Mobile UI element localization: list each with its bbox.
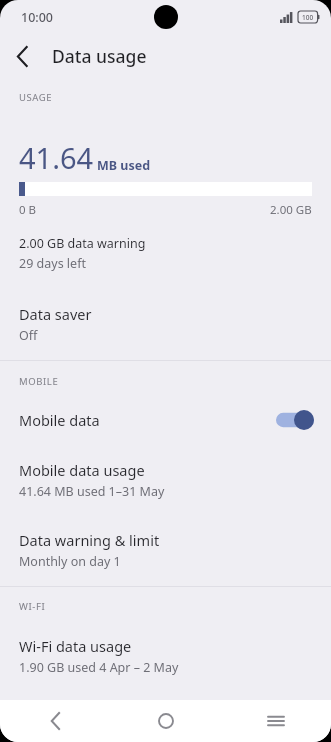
button[interactable]: Recent apps <box>221 700 331 742</box>
staticText: Off <box>19 327 38 344</box>
staticText: Wi-Fi data usage <box>19 636 132 656</box>
staticText: 41.64 MB used 1–31 May <box>19 483 165 500</box>
staticText: Data usage <box>52 44 147 68</box>
staticText: Monthly on day 1 <box>19 553 121 570</box>
button[interactable]: Back <box>0 700 111 742</box>
button[interactable]: Data saver <box>0 296 331 360</box>
staticText: 2.00 GB <box>270 202 312 218</box>
staticText: WI-FI <box>19 600 46 613</box>
staticText: 29 days left <box>19 255 86 272</box>
button[interactable]: Wi-Fi data usage <box>0 622 331 692</box>
staticText: MB used <box>97 157 151 174</box>
button[interactable]: Mobile data usage <box>0 446 331 516</box>
staticText: 2.00 GB data warning <box>19 235 146 252</box>
staticText: Mobile data usage <box>19 460 145 480</box>
staticText: Data warning & limit <box>19 530 160 550</box>
staticText: 1.90 GB used 4 Apr – 2 May <box>19 659 179 676</box>
button[interactable]: Data warning & limit <box>0 516 331 586</box>
staticText: 0 B <box>19 202 37 218</box>
button[interactable]: Mobile data <box>0 398 331 446</box>
button[interactable]: Home <box>111 700 221 742</box>
staticText: MOBILE <box>19 375 59 388</box>
staticText: USAGE <box>19 91 53 104</box>
staticText: 10:00 <box>21 9 54 26</box>
staticText: Mobile data <box>19 410 100 430</box>
staticText: Data saver <box>19 304 92 324</box>
button[interactable]: Back <box>0 34 44 78</box>
staticText: 41.64 <box>19 138 94 177</box>
staticText: 100 <box>302 13 314 22</box>
